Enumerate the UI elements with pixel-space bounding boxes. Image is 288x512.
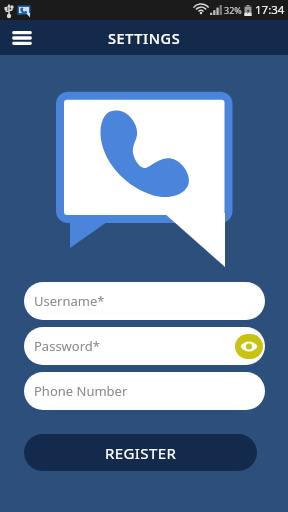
button[interactable]: Username*	[24, 282, 265, 320]
staticText: SETTINGS	[108, 28, 181, 48]
button[interactable]: Password*	[24, 327, 265, 365]
button[interactable]: Open navigation menu	[10, 26, 34, 50]
staticText: REGISTER	[105, 443, 177, 463]
staticText: Username*	[34, 292, 105, 310]
staticText: Phone Number	[34, 382, 128, 400]
button[interactable]: Phone Number	[24, 372, 265, 410]
staticText: 17:34	[255, 2, 285, 18]
button[interactable]: Show password	[235, 334, 263, 359]
button[interactable]: REGISTER	[24, 434, 257, 471]
staticText: Password*	[34, 337, 100, 355]
staticText: 32%	[224, 4, 242, 16]
